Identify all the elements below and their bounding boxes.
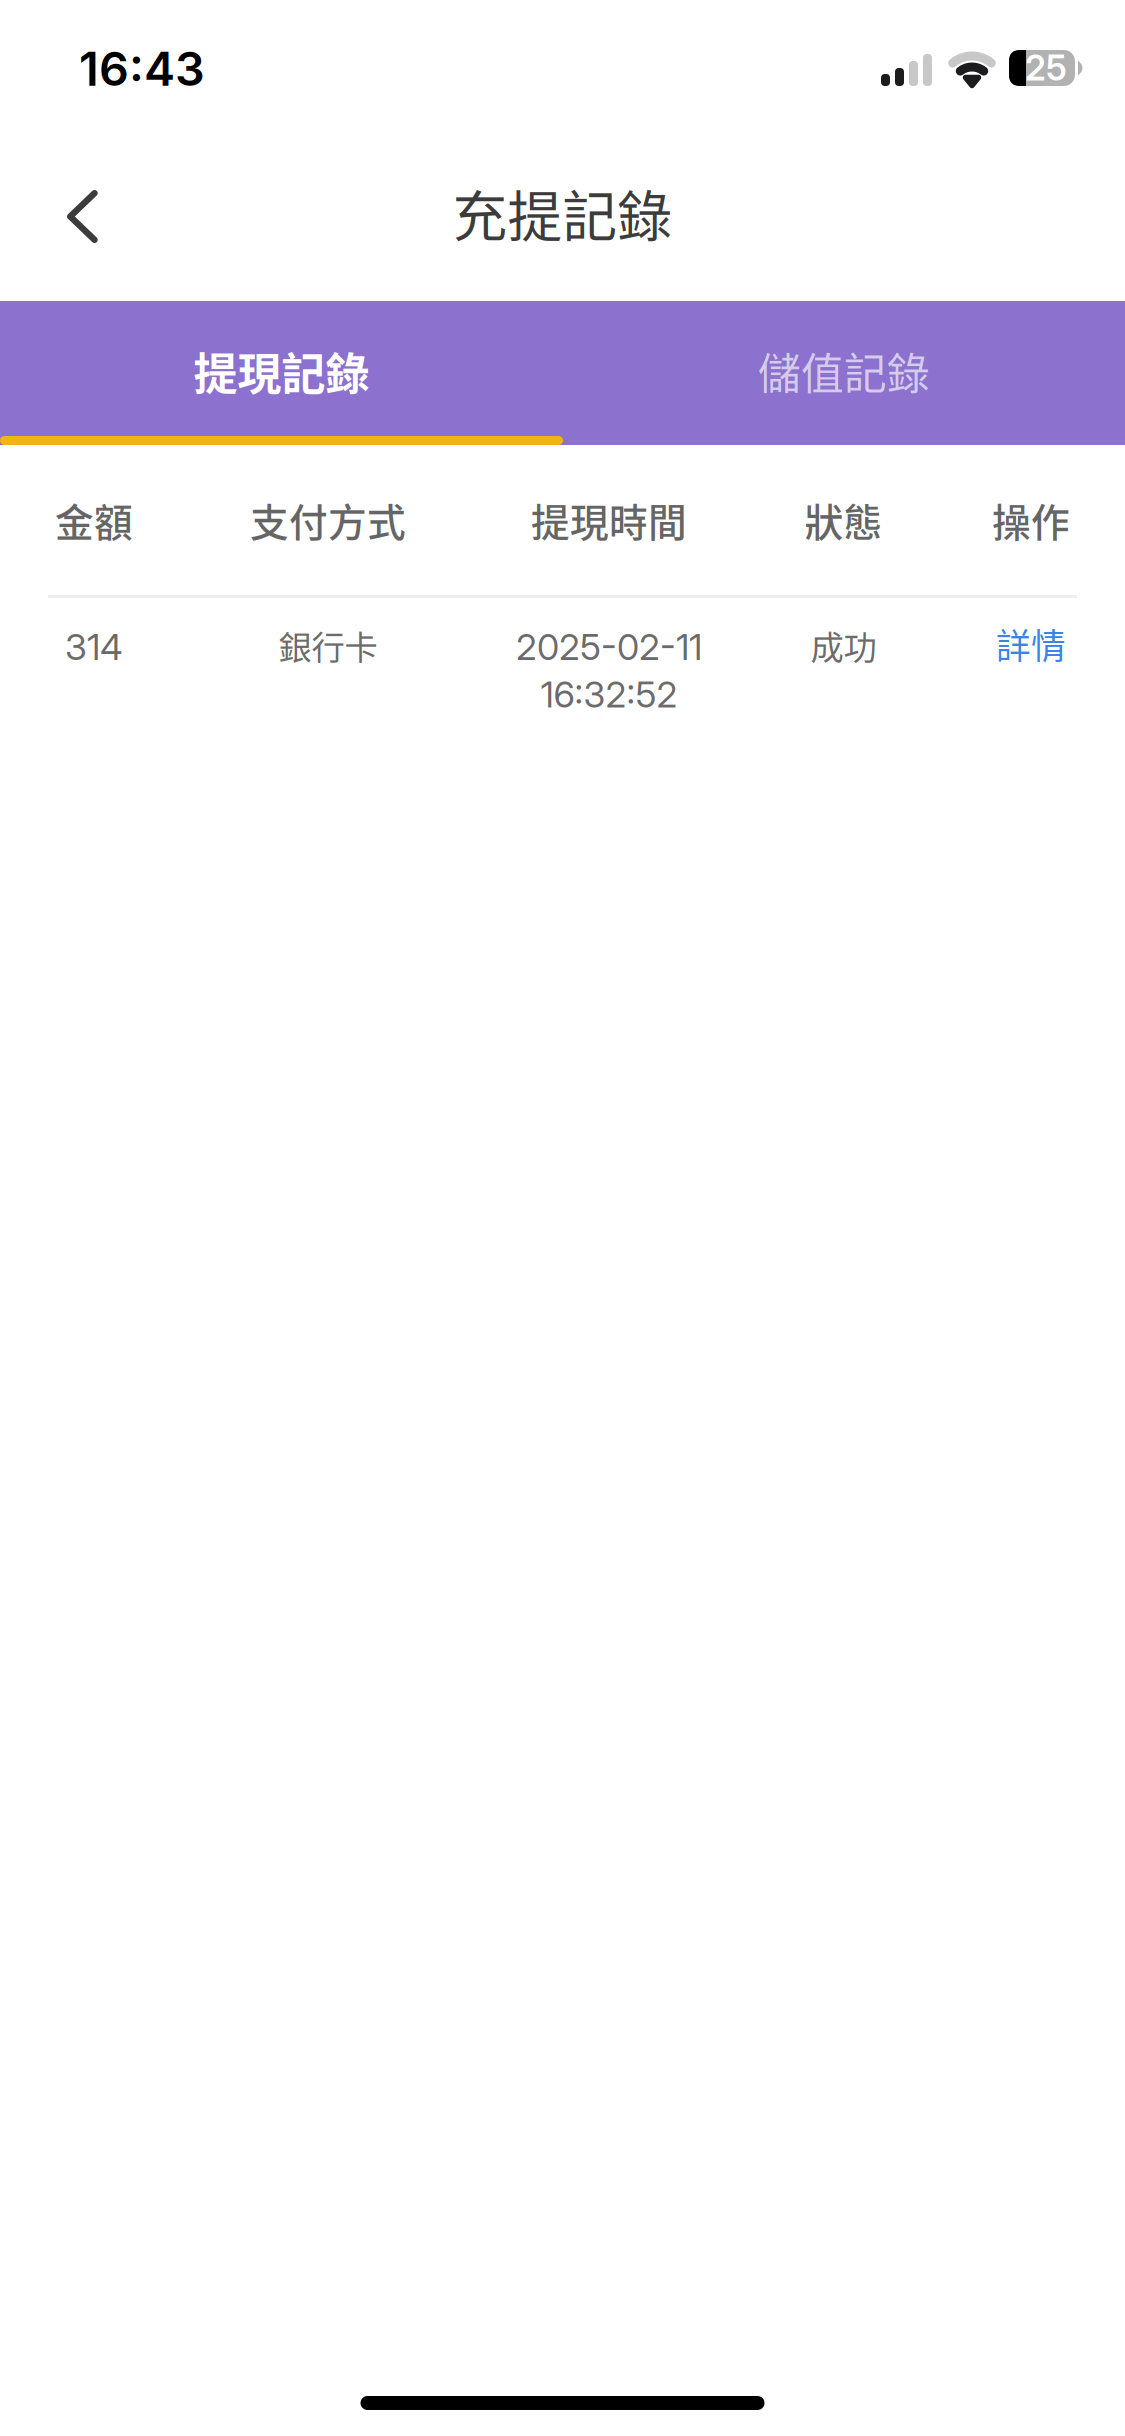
- staticText: 銀行卡: [278, 621, 377, 669]
- staticText: 2025-02-11: [516, 625, 702, 669]
- staticText: 提現時間: [531, 492, 687, 548]
- staticText: 詳情: [996, 619, 1066, 669]
- button[interactable]: 詳情: [937, 625, 1125, 665]
- staticText: 狀態: [804, 492, 882, 548]
- staticText: 314: [65, 625, 123, 669]
- staticText: 充提記錄: [452, 173, 672, 252]
- staticText: 成功: [810, 621, 876, 669]
- staticText: 支付方式: [250, 492, 406, 548]
- button[interactable]: 儲值記錄: [563, 301, 1125, 445]
- button[interactable]: 提現記錄: [0, 301, 563, 445]
- staticText: 金額: [55, 492, 133, 548]
- staticText: 操作: [992, 492, 1070, 548]
- staticText: 儲值記錄: [758, 340, 930, 402]
- staticText: 16:32:52: [540, 673, 677, 716]
- staticText: 提現記錄: [193, 339, 369, 403]
- staticText: 16:43: [79, 40, 205, 97]
- staticText: 25: [1025, 47, 1067, 89]
- button[interactable]: Back: [0, 162, 129, 271]
